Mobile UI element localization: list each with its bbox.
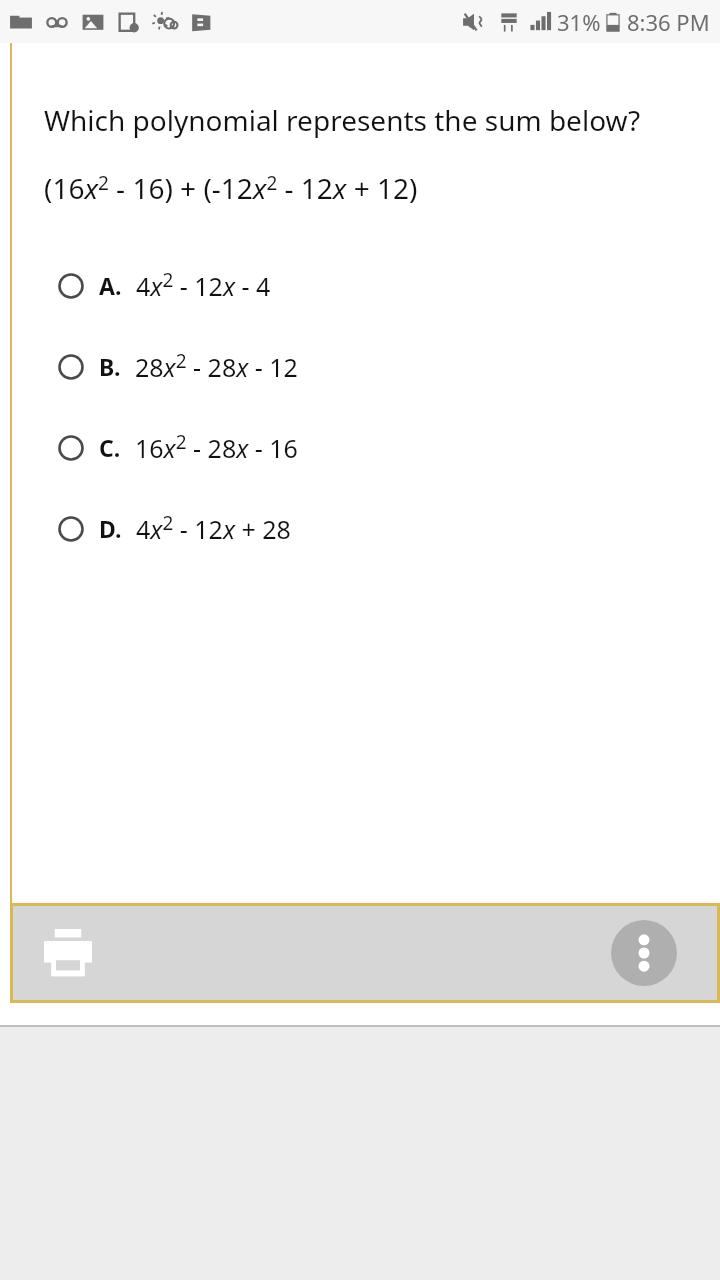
- staticText: Which polynomial represents the sum belo…: [44, 101, 641, 139]
- staticText: D.: [99, 513, 122, 544]
- staticText: (16x2 - 16) + (-12x2 - 12x + 12): [44, 169, 418, 207]
- button[interactable]: Print: [38, 923, 98, 983]
- staticText: 4x2 - 12x + 28: [136, 510, 291, 547]
- staticText: B.: [99, 351, 121, 382]
- staticText: 4x2 - 12x - 4: [136, 267, 271, 304]
- button[interactable]: A.: [0, 245, 720, 326]
- button[interactable]: More options: [611, 920, 677, 986]
- staticText: 8:36 PM: [627, 7, 710, 37]
- staticText: A.: [99, 270, 122, 301]
- button[interactable]: C.: [0, 407, 720, 488]
- staticText: C.: [99, 432, 121, 463]
- button[interactable]: B.: [0, 326, 720, 407]
- button[interactable]: D.: [0, 488, 720, 569]
- staticText: 16x2 - 28x - 16: [135, 429, 298, 466]
- staticText: 28x2 - 28x - 12: [135, 348, 298, 385]
- staticText: 31%: [557, 7, 601, 37]
